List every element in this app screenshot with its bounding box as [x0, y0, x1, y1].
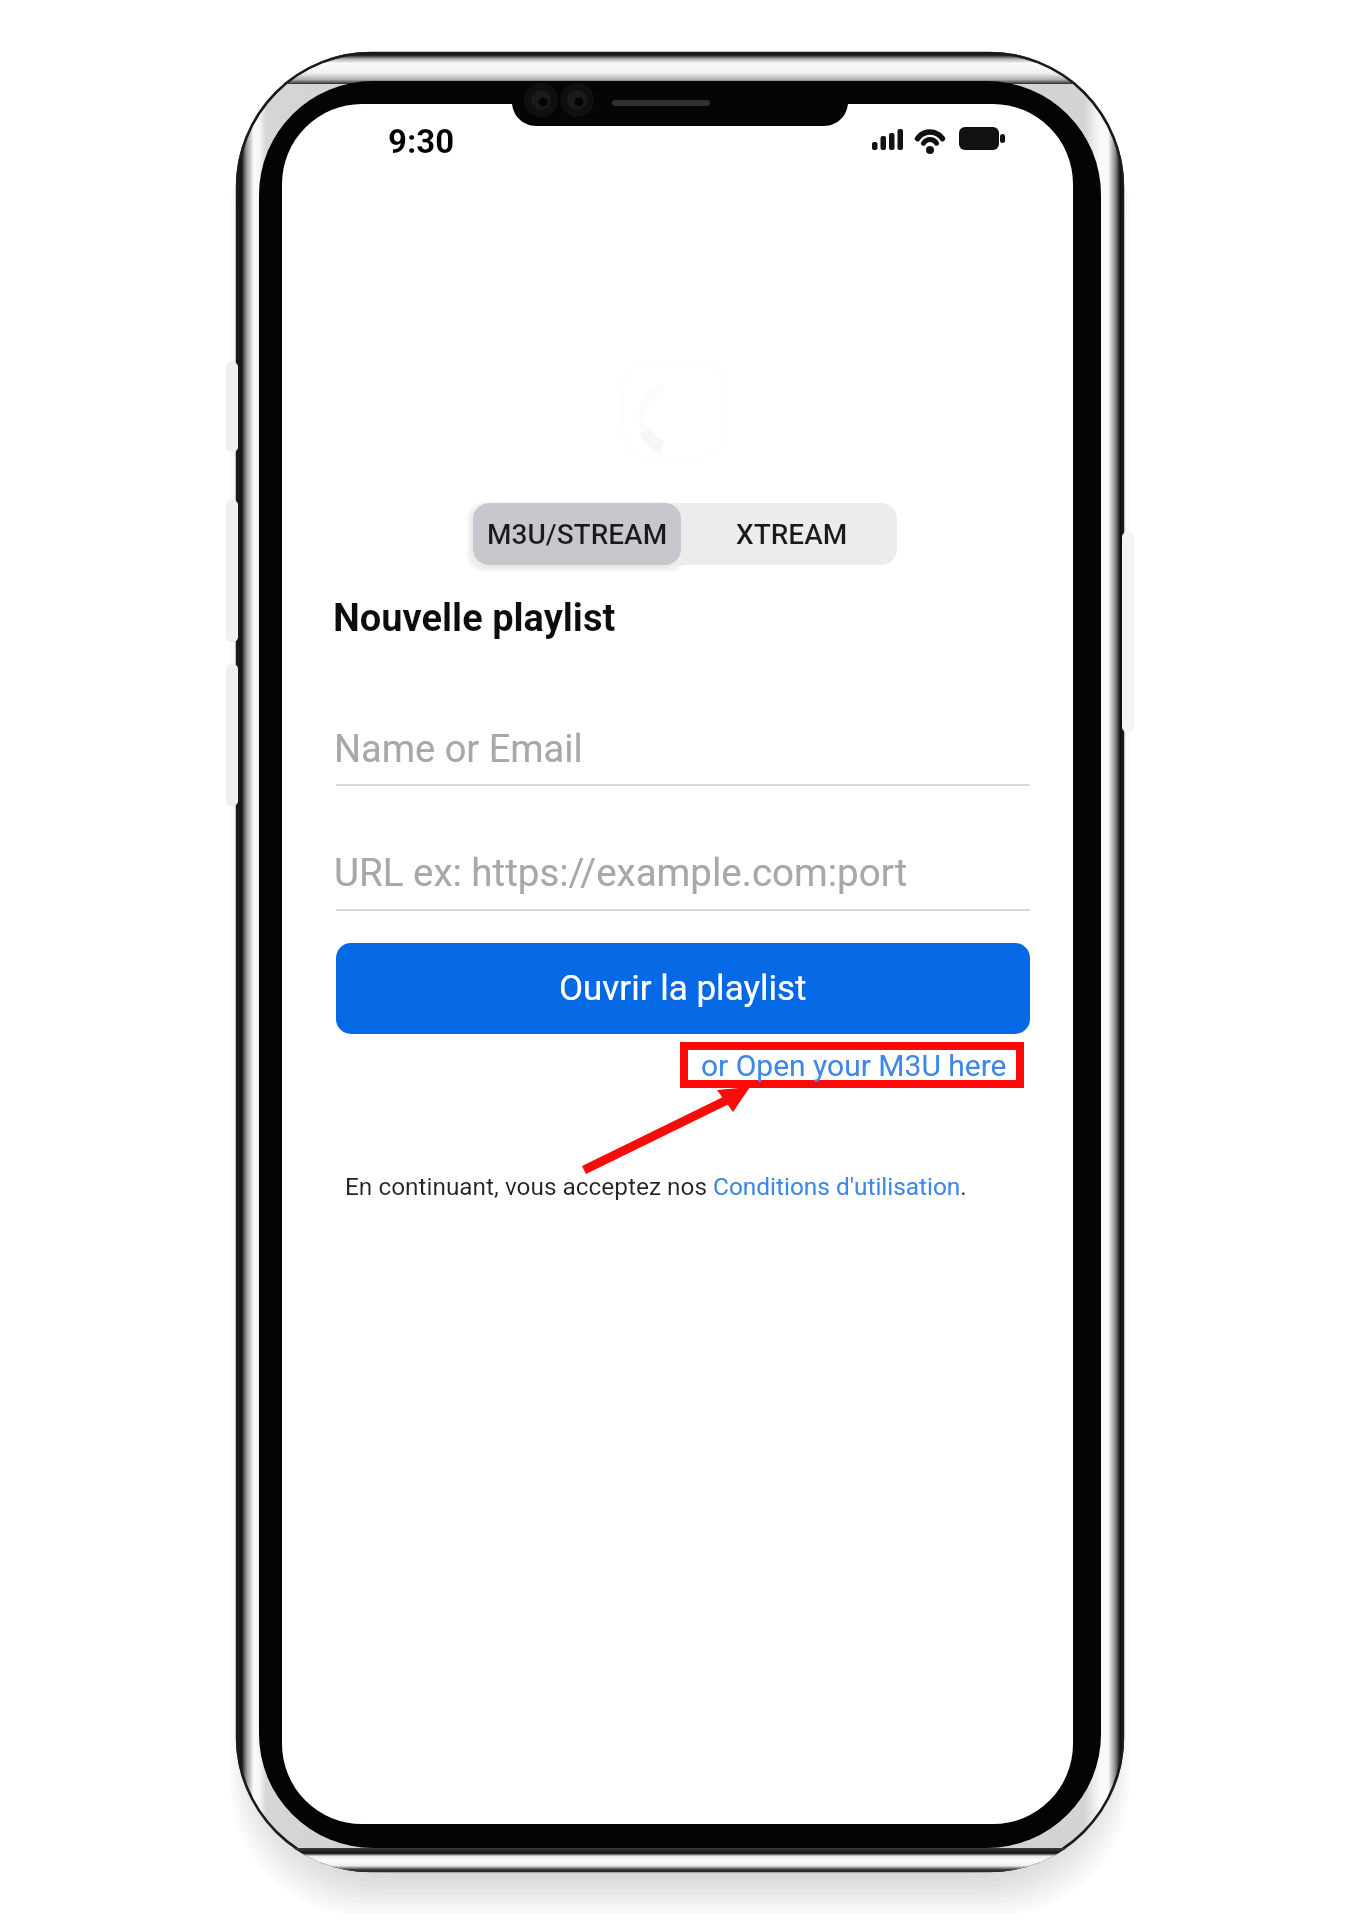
staticText: Ouvrir la playlist	[559, 968, 807, 1009]
staticText: En continuant, vous acceptez nos Conditi…	[345, 1172, 967, 1201]
button[interactable]: Name or Email	[334, 721, 1032, 791]
staticText: 9:30	[388, 122, 455, 161]
staticText: M3U/STREAM	[487, 518, 668, 551]
button[interactable]: XTREAM	[681, 503, 897, 565]
staticText: or Open your M3U here	[701, 1048, 1007, 1083]
staticText: XTREAM	[736, 518, 848, 551]
button[interactable]: or Open your M3U here	[680, 1042, 1024, 1088]
button[interactable]: URL ex: https://example.com:port	[334, 845, 1032, 913]
button[interactable]: Ouvrir la playlist	[336, 943, 1030, 1034]
staticText: Nouvelle playlist	[333, 596, 616, 641]
other: Signal, Wi-Fi and battery status	[870, 122, 1015, 162]
staticText: Name or Email	[334, 727, 583, 772]
staticText: URL ex: https://example.com:port	[334, 850, 908, 895]
button[interactable]: M3U/STREAM	[473, 503, 681, 565]
